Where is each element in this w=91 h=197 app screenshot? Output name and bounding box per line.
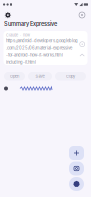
staticText: including-it.html bbox=[6, 60, 36, 65]
staticText: -for-android-how-it-works.html bbox=[6, 53, 63, 58]
button[interactable]: Settings bbox=[5, 12, 11, 18]
staticText: https://android-developers.googleblog bbox=[6, 38, 78, 43]
button[interactable]: Save bbox=[28, 72, 52, 80]
staticText: .com/2025/06/material-expressive bbox=[6, 45, 72, 50]
staticText: Open bbox=[10, 74, 19, 79]
staticText: Save bbox=[35, 74, 44, 79]
staticText: Summary Expressive bbox=[4, 20, 57, 27]
button[interactable]: New bbox=[69, 146, 84, 160]
button[interactable]: Collapse bbox=[79, 52, 85, 58]
button[interactable]: Assistant bbox=[69, 177, 84, 191]
staticText: Copy bbox=[66, 74, 75, 79]
button[interactable]: Details bbox=[79, 41, 85, 47]
button[interactable]: Profile bbox=[79, 12, 85, 18]
button[interactable]: Copy bbox=[55, 72, 86, 80]
button[interactable]: Open bbox=[4, 72, 25, 80]
staticText: Claude · now bbox=[6, 33, 30, 37]
button[interactable]: Camera bbox=[69, 161, 84, 175]
